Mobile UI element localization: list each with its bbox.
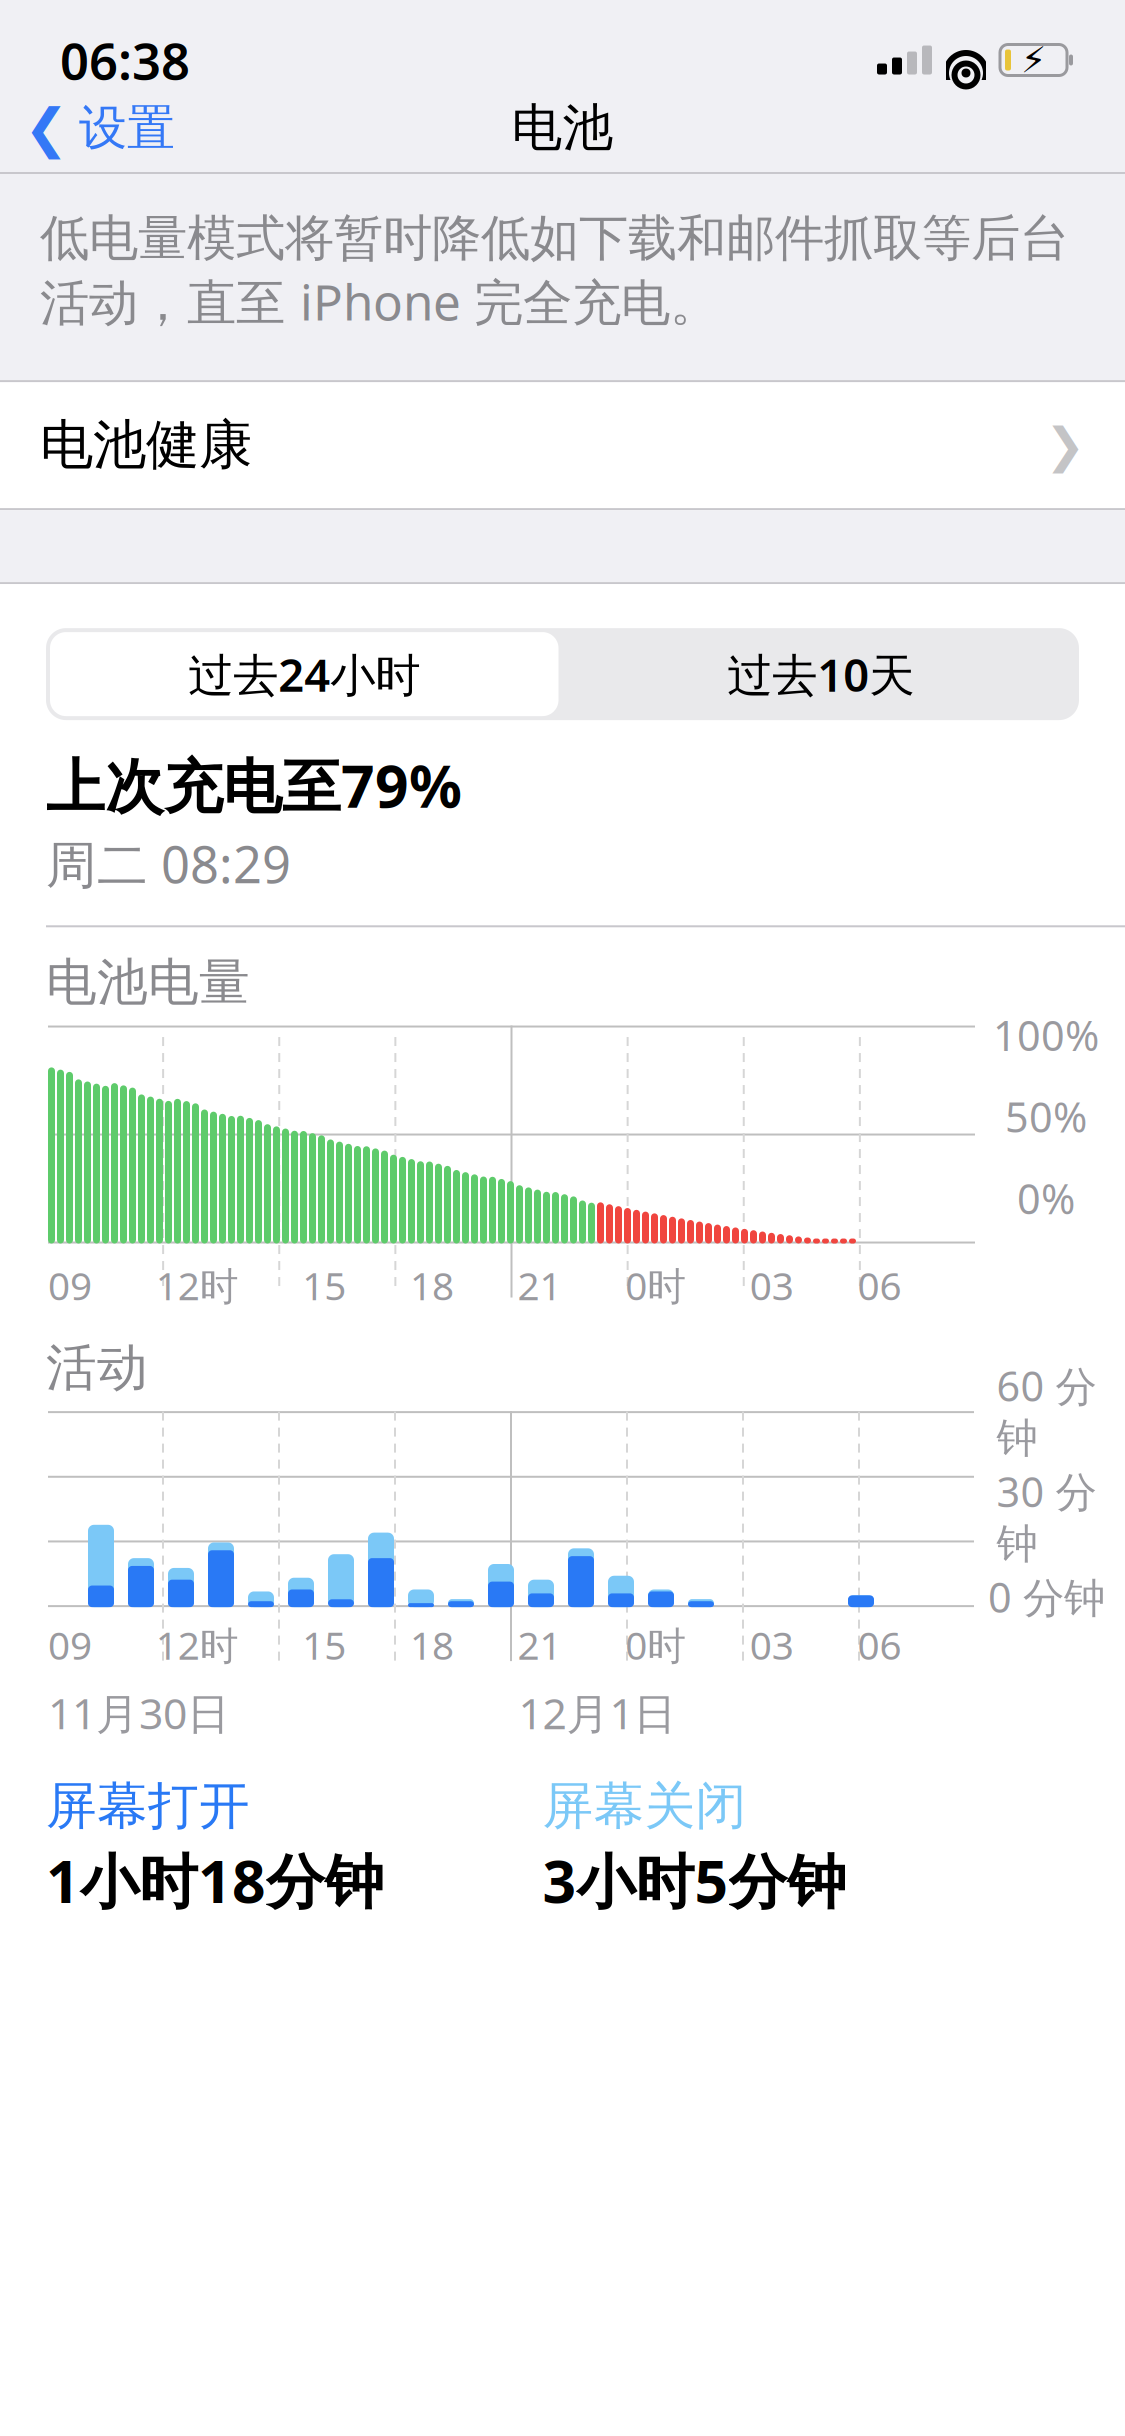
staticText: 屏幕打开 xyxy=(46,1775,250,1837)
staticText: 60 分钟 xyxy=(996,1358,1096,1464)
staticText: 09 xyxy=(48,1619,92,1670)
staticText: 06:38 xyxy=(60,26,190,94)
staticText: 100% xyxy=(993,1007,1099,1062)
staticText: 上次充电至79% xyxy=(46,746,462,824)
staticText: 过去24小时 xyxy=(188,644,420,704)
staticText: 0时 xyxy=(625,1259,686,1311)
staticText: 12月1日 xyxy=(518,1684,676,1741)
staticText: 21 xyxy=(517,1619,561,1670)
staticText: 活动 xyxy=(46,1337,148,1399)
staticText: 06 xyxy=(857,1619,901,1670)
button[interactable]: 过去24小时 xyxy=(46,628,562,720)
staticText: 12时 xyxy=(156,1259,239,1311)
staticText: 3小时5分钟 xyxy=(542,1841,846,1919)
staticText: 03 xyxy=(750,1619,794,1670)
staticText: 09 xyxy=(48,1259,92,1311)
staticText: 18 xyxy=(410,1619,454,1670)
staticText: 设置 xyxy=(79,98,175,157)
staticText: 0% xyxy=(1017,1171,1075,1225)
staticText: 周二 08:29 xyxy=(46,830,291,897)
staticText: 18 xyxy=(410,1259,454,1311)
staticText: 0时 xyxy=(625,1619,686,1670)
staticText: ⚡︎ xyxy=(1021,40,1046,80)
staticText: 1小时18分钟 xyxy=(46,1841,384,1919)
staticText: 屏幕关闭 xyxy=(542,1775,746,1837)
staticText: 12时 xyxy=(156,1619,239,1670)
staticText: 03 xyxy=(750,1259,794,1311)
button[interactable]: 电池健康 xyxy=(0,380,1125,510)
staticText: 06 xyxy=(857,1259,901,1311)
staticText: 21 xyxy=(517,1259,561,1311)
staticText: 0 分钟 xyxy=(988,1569,1105,1624)
staticText: 过去10天 xyxy=(727,644,914,704)
staticText: ❮ xyxy=(24,98,69,158)
staticText: 30 分钟 xyxy=(996,1464,1096,1569)
staticText: 电池健康 xyxy=(40,412,252,478)
staticText: 11月30日 xyxy=(48,1684,230,1741)
staticText: 15 xyxy=(302,1619,346,1670)
button[interactable]: 过去10天 xyxy=(562,628,1079,720)
staticText: 低电量模式将暂时降低如下载和邮件抓取等后台活动，直至 iPhone 完全充电。 xyxy=(40,208,1069,334)
staticText: 15 xyxy=(302,1259,346,1311)
button[interactable]: ❮ xyxy=(0,88,175,168)
staticText: 电池电量 xyxy=(46,951,250,1013)
staticText: 50% xyxy=(1005,1089,1087,1144)
staticText: 电池 xyxy=(511,97,613,159)
staticText: ❯ xyxy=(1045,418,1085,472)
